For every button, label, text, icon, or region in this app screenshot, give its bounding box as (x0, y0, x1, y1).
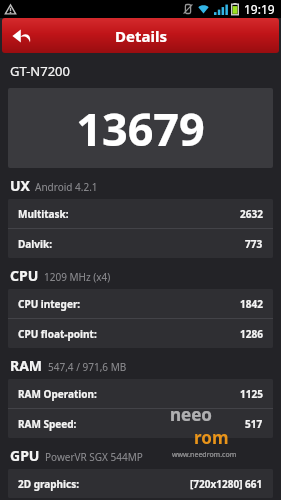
staticText: 19:19 (244, 1, 275, 17)
staticText: PowerVR SGX 544MP (45, 450, 143, 464)
staticText: rom (194, 426, 229, 449)
staticText: 1209 MHz (x4) (44, 270, 111, 284)
button[interactable]: Dalvik: (8, 229, 273, 258)
staticText: RAM Operation: (18, 387, 97, 401)
staticText: CPU integer: (18, 297, 81, 311)
button[interactable]: Back (2, 18, 42, 53)
button[interactable]: Multitask: (8, 199, 273, 228)
staticText: 547,4 / 971,6 MB (48, 360, 127, 374)
staticText: CPU float-point: (18, 327, 97, 341)
button[interactable]: RAM Speed: (8, 409, 273, 438)
staticText: 2D graphics: (18, 477, 80, 491)
staticText: neeo (170, 403, 212, 426)
staticText: Details (115, 26, 167, 46)
staticText: 13679 (76, 98, 205, 159)
staticText: Multitask: (18, 207, 69, 221)
staticText: 773 (245, 237, 263, 251)
staticText: 1125 (240, 387, 263, 401)
staticText: Dalvik: (18, 237, 52, 251)
staticText: CPU (10, 266, 39, 285)
staticText: www.needrom.com (172, 450, 237, 460)
button[interactable]: CPU integer: (8, 289, 273, 318)
button[interactable]: 2D graphics: (8, 469, 273, 498)
staticText: 1842 (240, 297, 263, 311)
staticText: RAM Speed: (18, 417, 77, 431)
staticText: [720x1280] 661 (190, 477, 263, 491)
staticText: GPU (10, 446, 40, 465)
staticText: 2632 (240, 207, 263, 221)
button[interactable]: CPU float-point: (8, 319, 273, 348)
button[interactable]: RAM Operation: (8, 379, 273, 408)
staticText: RAM (10, 356, 43, 375)
staticText: 517 (245, 417, 263, 431)
staticText: UX (10, 176, 30, 195)
staticText: 1286 (240, 327, 263, 341)
staticText: Android 4.2.1 (35, 180, 98, 194)
staticText: GT-N7200 (10, 62, 70, 80)
